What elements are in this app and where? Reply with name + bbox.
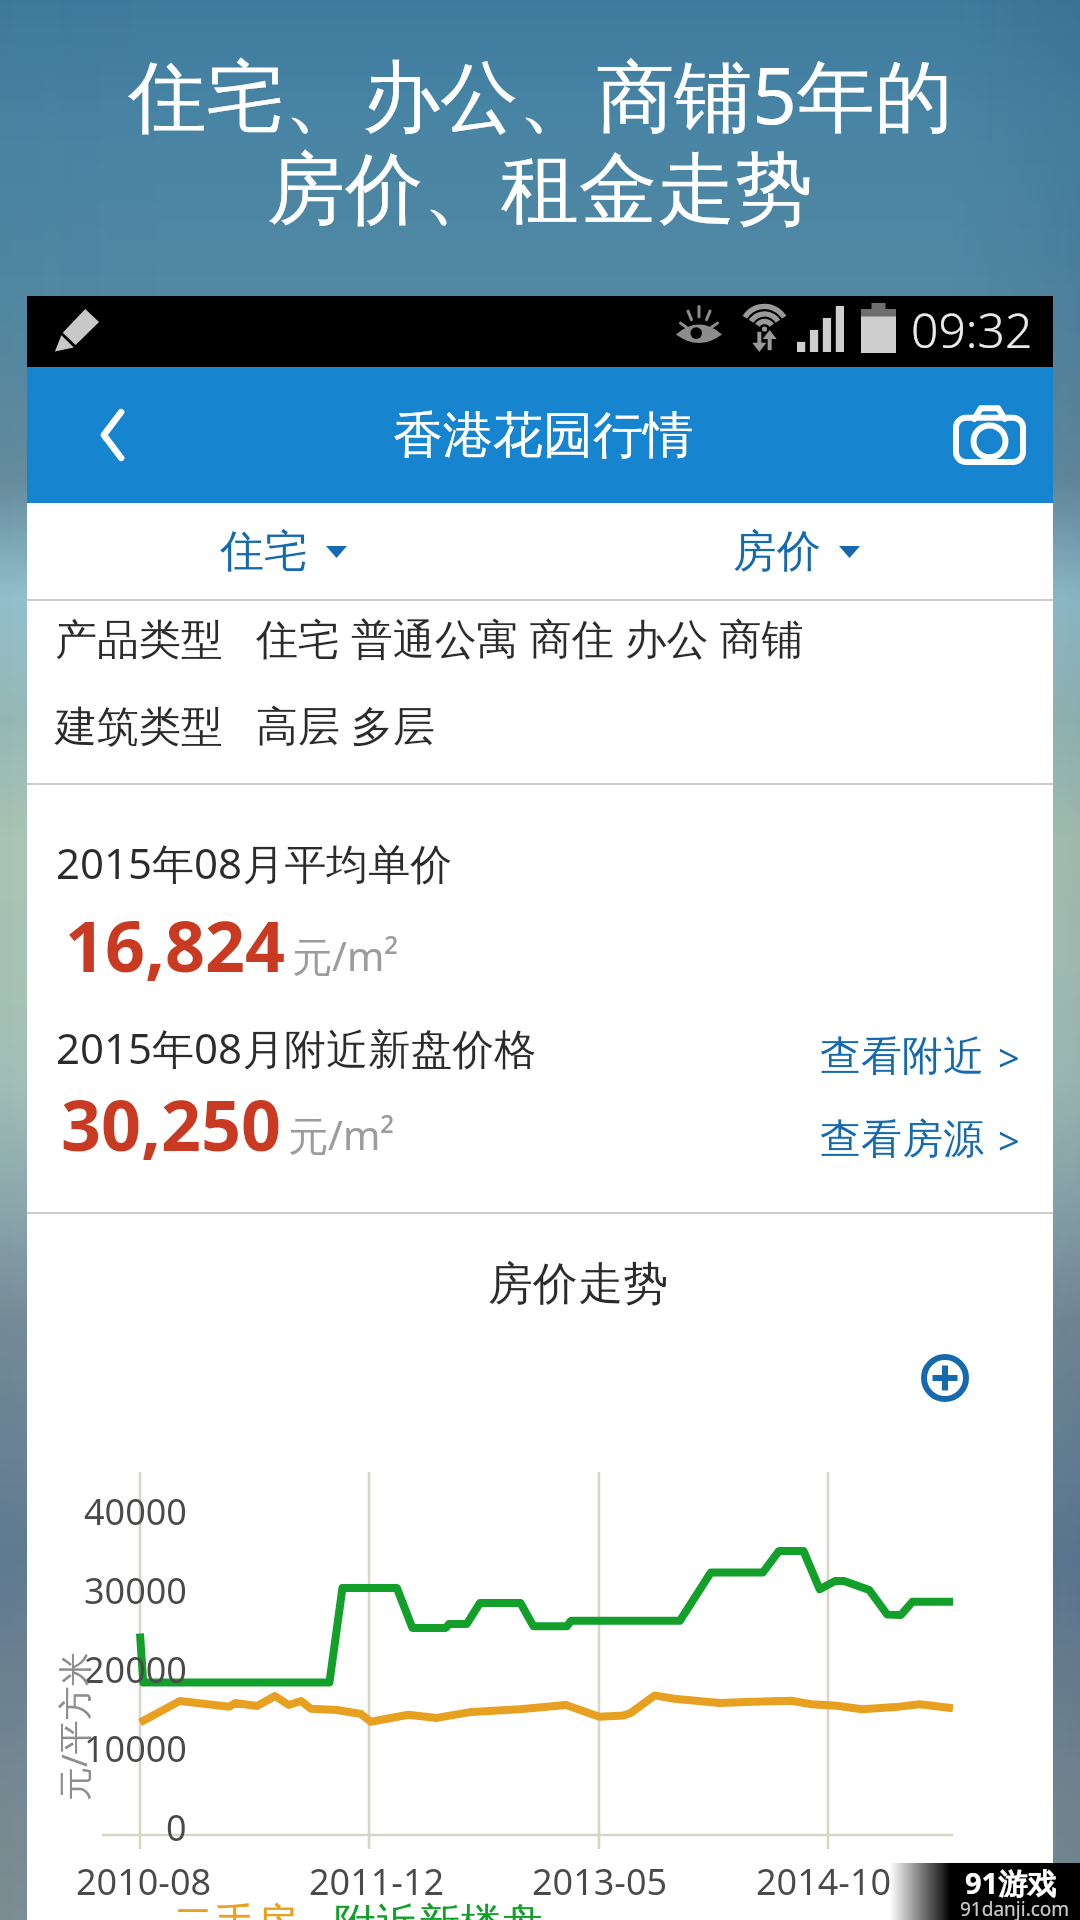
staticText: 10000 [84,1724,187,1773]
staticText: 0 [166,1803,187,1852]
staticText: 住宅 [220,524,308,579]
button[interactable]: Add [921,1354,969,1402]
staticText: > [998,1031,1020,1083]
staticText: 香港花园行情 [393,404,693,467]
staticText: 元/m² [288,1107,395,1162]
staticText: 40000 [84,1487,187,1536]
staticText: 附近新楼盘 [334,1898,544,1920]
staticText: 元/平方米 [51,1652,97,1801]
staticText: > [998,1114,1020,1166]
staticText: 16,824 [65,897,286,992]
button[interactable]: Camera [917,367,1062,503]
staticText: 30,250 [61,1076,282,1171]
staticText: 2010-08 [76,1857,212,1906]
button[interactable]: 住宅 [27,503,540,599]
staticText: 2015年08月附近新盘价格 [56,1019,537,1076]
staticText: 二手房 [172,1898,298,1920]
button[interactable]: 查看附近 [820,1031,1056,1083]
staticText: 2014-10 [756,1857,892,1906]
staticText: 建筑类型 高层 多层 [55,696,435,753]
button[interactable]: 房价 [540,503,1053,599]
staticText: 30000 [84,1566,187,1615]
staticText: 元/m² [292,928,399,983]
staticText: 91danji.com [960,1896,1070,1920]
staticText: 91游戏 [965,1863,1057,1899]
staticText: 2013-05 [532,1857,668,1906]
staticText: 2015年08月平均单价 [56,834,453,891]
staticText: 查看附近 [820,1031,984,1083]
staticText: 2011-12 [309,1857,445,1906]
staticText: 20000 [84,1645,187,1694]
staticText: 房价、租金走势 [267,141,813,239]
staticText: 09:32 [911,297,1033,362]
button[interactable]: 查看房源 [820,1114,1056,1166]
staticText: 房价走势 [488,1256,668,1313]
staticText: 查看房源 [820,1114,984,1166]
staticText: 房价 [733,524,821,579]
staticText: 产品类型 住宅 普通公寓 商住 办公 商铺 [55,609,804,666]
staticText: 住宅、办公、商铺5年的 [128,41,953,148]
button[interactable]: Back [39,367,185,503]
